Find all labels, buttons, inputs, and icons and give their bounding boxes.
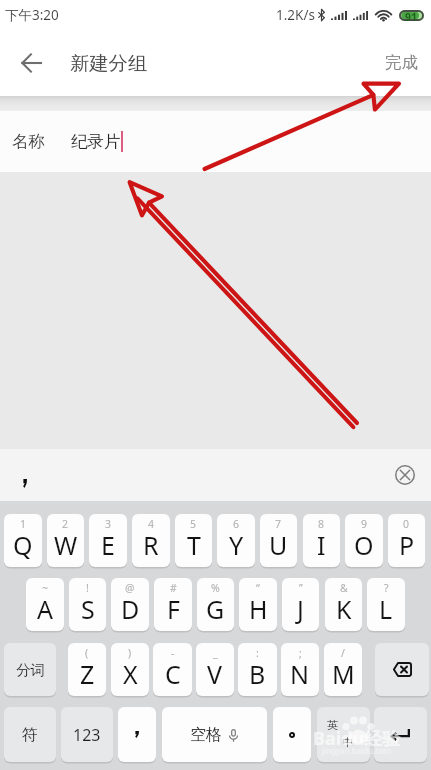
button[interactable]: 完成 bbox=[363, 30, 431, 96]
button[interactable]: ? bbox=[367, 578, 405, 631]
staticText: ; bbox=[299, 646, 302, 660]
staticText: A bbox=[37, 592, 53, 626]
staticText: 8 bbox=[318, 517, 325, 531]
staticText: H bbox=[249, 592, 268, 626]
staticText: I bbox=[317, 528, 326, 562]
button[interactable]: 分词 bbox=[4, 643, 56, 696]
staticText: 符 bbox=[22, 725, 38, 745]
button[interactable]: 返回 bbox=[0, 30, 63, 96]
staticText: F bbox=[167, 592, 180, 626]
button[interactable]: @ bbox=[111, 578, 149, 631]
staticText: ( bbox=[85, 646, 89, 660]
staticText: 6 bbox=[233, 517, 240, 531]
button[interactable]: ! bbox=[69, 578, 106, 631]
staticText: # bbox=[170, 581, 177, 595]
staticText: Z bbox=[80, 657, 95, 691]
button[interactable]: 123 bbox=[61, 707, 113, 762]
staticText: 分词 bbox=[16, 661, 45, 679]
button[interactable]: 中英文切换 bbox=[317, 707, 370, 762]
staticText: M bbox=[332, 657, 355, 691]
staticText: 纪录片 bbox=[71, 131, 121, 152]
staticText: _ bbox=[213, 646, 218, 660]
button[interactable]: ) bbox=[111, 643, 149, 696]
staticText: Q bbox=[13, 528, 33, 562]
button[interactable]: 回车 bbox=[374, 707, 427, 762]
staticText: V bbox=[207, 657, 223, 691]
button[interactable]: 句号 bbox=[273, 707, 311, 762]
button[interactable]: _ bbox=[196, 643, 234, 696]
button[interactable]: 6 bbox=[217, 514, 255, 567]
staticText: 空格 bbox=[190, 725, 222, 745]
staticText: Y bbox=[229, 528, 244, 562]
staticText: J bbox=[297, 592, 304, 626]
staticText: 中 bbox=[342, 735, 353, 749]
button[interactable]: 符 bbox=[4, 707, 56, 762]
staticText: % bbox=[211, 581, 220, 595]
staticText: Baidu经验 bbox=[313, 726, 401, 751]
staticText: C bbox=[165, 657, 181, 691]
button[interactable]: 9 bbox=[345, 514, 383, 567]
staticText: T bbox=[187, 528, 201, 562]
button[interactable]: 3 bbox=[89, 514, 127, 567]
staticText: U bbox=[269, 528, 288, 562]
button[interactable]: ; bbox=[281, 643, 319, 696]
button[interactable]: # bbox=[154, 578, 192, 631]
button[interactable]: ( bbox=[68, 643, 106, 696]
staticText: 下午3:20 bbox=[5, 6, 59, 24]
button[interactable]: “ bbox=[239, 578, 277, 631]
button[interactable]: 关闭键盘 bbox=[390, 460, 420, 490]
staticText: O bbox=[354, 528, 374, 562]
staticText: 完成 bbox=[385, 52, 418, 73]
staticText: 5 bbox=[190, 517, 197, 531]
button[interactable]: 7 bbox=[260, 514, 297, 567]
button[interactable]: ” bbox=[282, 578, 319, 631]
staticText: G bbox=[206, 592, 225, 626]
button[interactable]: 0 bbox=[388, 514, 425, 567]
staticText: R bbox=[143, 528, 159, 562]
button[interactable]: 4 bbox=[132, 514, 170, 567]
button[interactable]: 8 bbox=[303, 514, 340, 567]
staticText: jingyan.baidu.com bbox=[322, 745, 392, 756]
staticText: D bbox=[121, 592, 140, 626]
staticText: 1.2K/s bbox=[276, 6, 315, 24]
staticText: 1 bbox=[20, 517, 27, 531]
staticText: / bbox=[341, 646, 345, 660]
staticText: @ bbox=[125, 581, 135, 595]
button[interactable]: - bbox=[153, 643, 192, 696]
button[interactable]: 5 bbox=[175, 514, 212, 567]
staticText: : bbox=[256, 646, 259, 660]
staticText: ” bbox=[299, 581, 303, 595]
button[interactable]: ~ bbox=[26, 578, 64, 631]
staticText: 123 bbox=[73, 724, 101, 746]
staticText: ~ bbox=[42, 581, 49, 595]
staticText: P bbox=[399, 528, 415, 562]
staticText: N bbox=[290, 657, 310, 691]
button[interactable]: 逗号 bbox=[118, 707, 156, 762]
staticText: - bbox=[171, 646, 175, 660]
staticText: ! bbox=[86, 581, 89, 595]
staticText: 7 bbox=[275, 517, 282, 531]
staticText: 名称 bbox=[12, 131, 45, 152]
staticText: 2 bbox=[62, 517, 69, 531]
staticText: 新建分组 bbox=[70, 51, 148, 75]
button[interactable]: 1 bbox=[4, 514, 42, 567]
button[interactable]: 名称 bbox=[0, 111, 431, 172]
button[interactable]: % bbox=[197, 578, 234, 631]
staticText: 91 bbox=[405, 10, 418, 21]
staticText: S bbox=[81, 592, 95, 626]
staticText: ) bbox=[128, 646, 132, 660]
staticText: X bbox=[123, 657, 138, 691]
button[interactable]: / bbox=[324, 643, 362, 696]
button[interactable]: 删除 bbox=[375, 643, 429, 696]
staticText: & bbox=[340, 581, 348, 595]
staticText: 3 bbox=[105, 517, 112, 531]
staticText: B bbox=[249, 657, 266, 691]
staticText: 英 bbox=[327, 718, 338, 732]
button[interactable]: 2 bbox=[47, 514, 84, 567]
staticText: E bbox=[101, 528, 115, 562]
staticText: W bbox=[54, 528, 78, 562]
button[interactable]: & bbox=[325, 578, 362, 631]
button[interactable]: : bbox=[238, 643, 277, 696]
button[interactable]: 空格 bbox=[162, 707, 267, 762]
staticText: 0 bbox=[403, 517, 410, 531]
